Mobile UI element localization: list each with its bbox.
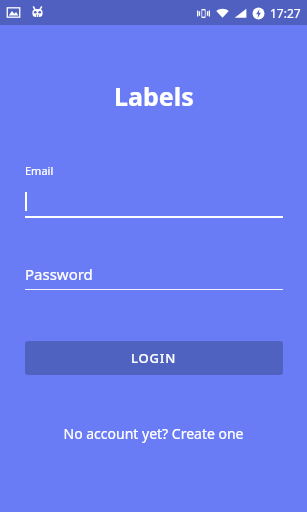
button[interactable]: Password	[25, 261, 283, 290]
button[interactable]: Email input field	[25, 188, 283, 218]
staticText: Email	[25, 163, 54, 178]
staticText: No account yet? Create one	[63, 424, 244, 443]
staticText: LOGIN	[131, 349, 177, 367]
staticText: Labels	[114, 79, 194, 113]
button[interactable]: No account yet? Create one	[0, 420, 307, 446]
button[interactable]: LOGIN	[25, 341, 283, 375]
staticText: Password	[25, 264, 93, 284]
staticText: 17:27	[270, 5, 301, 21]
